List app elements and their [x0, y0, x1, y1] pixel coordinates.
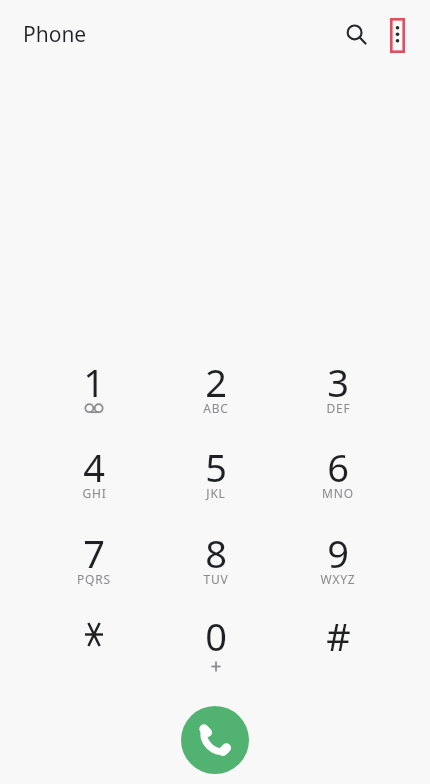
staticText: PQRS [77, 571, 111, 587]
staticText: 3 [327, 356, 349, 408]
button[interactable]: 2 [155, 356, 277, 440]
button[interactable]: Call [181, 706, 249, 774]
button[interactable]: Star [33, 610, 155, 694]
button[interactable]: Search [333, 11, 379, 57]
staticText: 4 [83, 441, 105, 493]
button[interactable]: 3 [277, 356, 399, 440]
staticText: 2 [205, 356, 227, 408]
button[interactable]: 6 [277, 441, 399, 525]
button[interactable]: 5 [155, 441, 277, 525]
button[interactable]: 7 [33, 527, 155, 611]
staticText: 0 [205, 610, 227, 662]
staticText: 5 [205, 441, 227, 493]
staticText: 8 [205, 527, 227, 579]
staticText: ABC [203, 400, 229, 416]
staticText: 7 [83, 527, 105, 579]
staticText: WXYZ [320, 571, 356, 587]
button[interactable]: More options [374, 12, 420, 58]
button[interactable]: 0 [155, 610, 277, 694]
button[interactable]: Pound [277, 610, 399, 694]
staticText: 9 [327, 527, 349, 579]
button[interactable]: 8 [155, 527, 277, 611]
staticText: MNO [322, 485, 354, 501]
staticText: 1 [83, 356, 105, 408]
staticText: DEF [326, 400, 351, 416]
button[interactable]: 9 [277, 527, 399, 611]
button[interactable]: 1 [33, 356, 155, 440]
staticText: TUV [203, 571, 229, 587]
staticText: 6 [327, 441, 349, 493]
staticText: Phone [23, 20, 87, 49]
staticText: # [326, 610, 351, 662]
button[interactable]: 4 [33, 441, 155, 525]
staticText: JKL [206, 485, 226, 501]
staticText: GHI [82, 485, 107, 501]
